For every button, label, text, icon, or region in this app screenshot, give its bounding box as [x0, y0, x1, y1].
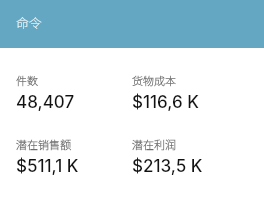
staticText: 命令	[16, 13, 43, 32]
staticText: 潜在利润	[132, 136, 176, 152]
staticText: $116,6 K	[132, 92, 199, 113]
button[interactable]: 潜在销售额	[0, 136, 132, 177]
staticText: 货物成本	[132, 72, 176, 88]
staticText: 潜在销售额	[16, 136, 71, 152]
staticText: $213,5 K	[132, 156, 203, 177]
staticText: $511,1 K	[16, 156, 79, 177]
button[interactable]: 件数	[0, 72, 132, 113]
button[interactable]: 潜在利润	[132, 136, 264, 177]
button[interactable]: 货物成本	[132, 72, 264, 113]
staticText: 48,407	[16, 92, 75, 113]
staticText: 件数	[16, 72, 38, 88]
